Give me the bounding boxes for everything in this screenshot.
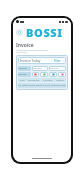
button[interactable]: Customer Name bbox=[32, 66, 48, 71]
staticText: Filter bbox=[54, 59, 61, 63]
staticText: Amount bbox=[56, 79, 64, 82]
staticText: Invoice Today bbox=[20, 59, 54, 63]
button[interactable]: Customer Address bbox=[49, 66, 66, 71]
button[interactable]: Invoice Today bbox=[18, 57, 66, 64]
staticText: Customer bbox=[43, 79, 53, 82]
button[interactable]: Date bbox=[18, 78, 26, 82]
staticText: Date bbox=[20, 79, 25, 82]
staticText: BOSSI bbox=[26, 25, 63, 40]
staticText: Customer Name bbox=[32, 67, 48, 70]
button[interactable]: Description bbox=[26, 78, 41, 82]
button[interactable]: Account bbox=[16, 29, 23, 36]
button[interactable]: Amount bbox=[54, 78, 66, 82]
staticText: Customer Address bbox=[49, 67, 66, 70]
button[interactable]: Order by total bbox=[18, 66, 31, 71]
button[interactable]: Export bbox=[40, 72, 48, 77]
button[interactable]: Order by date bbox=[18, 72, 31, 77]
button[interactable]: Delete bbox=[32, 72, 39, 77]
staticText: Description bbox=[28, 79, 40, 82]
button[interactable]: Customer bbox=[41, 78, 54, 82]
staticText: Invoice bbox=[16, 42, 34, 49]
staticText: No transactions found in your selection … bbox=[18, 84, 66, 87]
staticText: Order by date bbox=[18, 73, 31, 76]
staticText: Order by total bbox=[18, 67, 31, 70]
button[interactable]: Share bbox=[58, 72, 66, 77]
button[interactable]: Print bbox=[49, 72, 57, 77]
